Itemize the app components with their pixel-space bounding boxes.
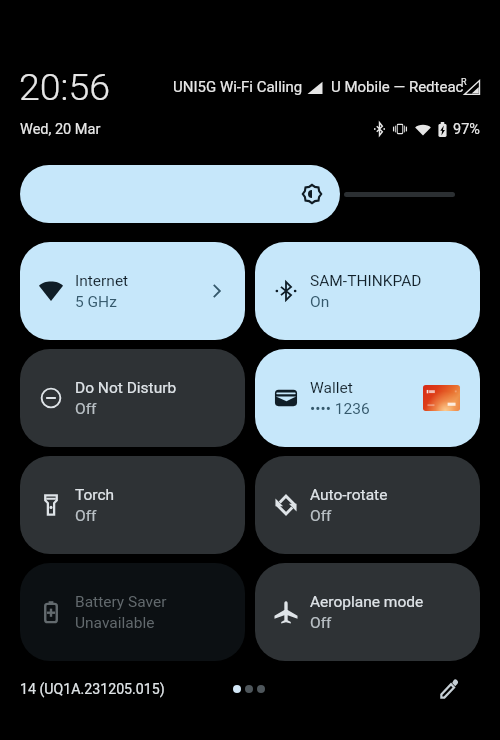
button[interactable]: Aeroplane mode [255, 563, 480, 661]
staticText: Do Not Disturb [75, 379, 177, 397]
button[interactable]: SAM-THINKPAD [255, 242, 480, 340]
staticText: Unavailable [75, 614, 155, 632]
button[interactable]: Battery Saver [20, 563, 245, 661]
button[interactable]: Auto-rotate [255, 456, 480, 554]
staticText: Off [75, 507, 97, 525]
staticText: Internet [75, 272, 129, 290]
staticText: Off [310, 507, 332, 525]
staticText: UNI5G Wi-Fi Calling [173, 78, 303, 96]
staticText: Off [310, 614, 332, 632]
staticText: Battery Saver [75, 593, 167, 611]
staticText: Wed, 20 Mar [20, 121, 101, 138]
button[interactable]: Torch [20, 456, 245, 554]
staticText: Auto-rotate [310, 486, 388, 504]
button[interactable]: Internet [20, 242, 245, 340]
staticText: •••• 1236 [310, 400, 370, 418]
staticText: Aeroplane mode [310, 593, 424, 611]
staticText: Torch [75, 486, 115, 504]
staticText: On [310, 293, 330, 311]
button[interactable]: Brightness [0, 165, 500, 223]
staticText: 20:56 [19, 65, 111, 107]
staticText: 14 (UQ1A.231205.015) [20, 681, 165, 698]
staticText: SAM-THINKPAD [310, 272, 422, 290]
staticText: 5 GHz [75, 293, 117, 311]
staticText: R [461, 77, 467, 88]
button[interactable]: Wallet [255, 349, 480, 447]
staticText: 97% [453, 121, 480, 138]
button[interactable]: Edit tiles [432, 672, 466, 706]
staticText: Wallet [310, 379, 353, 397]
staticText: Off [75, 400, 97, 418]
staticText: U Mobile — Redteac [331, 78, 464, 96]
button[interactable]: Do Not Disturb [20, 349, 245, 447]
